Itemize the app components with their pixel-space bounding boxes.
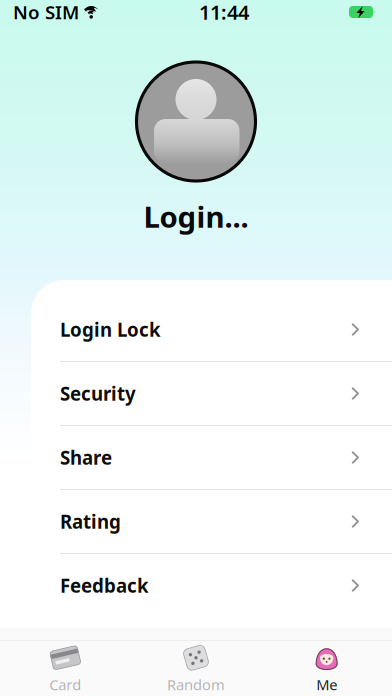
staticText: Card [49, 675, 81, 694]
staticText: No SIM [13, 0, 79, 24]
staticText: Rating [60, 509, 121, 534]
staticText: Login Lock [60, 317, 161, 342]
staticText: Random [167, 675, 225, 694]
button[interactable]: Share [31, 426, 392, 489]
staticText: Share [60, 445, 112, 470]
button[interactable]: Login Lock [31, 298, 392, 361]
button[interactable]: Random [131, 641, 261, 696]
button[interactable]: Feedback [31, 554, 392, 617]
staticText: 11:44 [199, 0, 249, 25]
staticText: Me [316, 675, 337, 694]
button[interactable]: Rating [31, 490, 392, 553]
staticText: Security [60, 381, 136, 406]
staticText: Login... [143, 197, 248, 236]
staticText: Feedback [60, 573, 149, 598]
button[interactable]: Security [31, 362, 392, 425]
button[interactable]: Me [261, 641, 392, 696]
button[interactable]: Card [0, 641, 131, 696]
